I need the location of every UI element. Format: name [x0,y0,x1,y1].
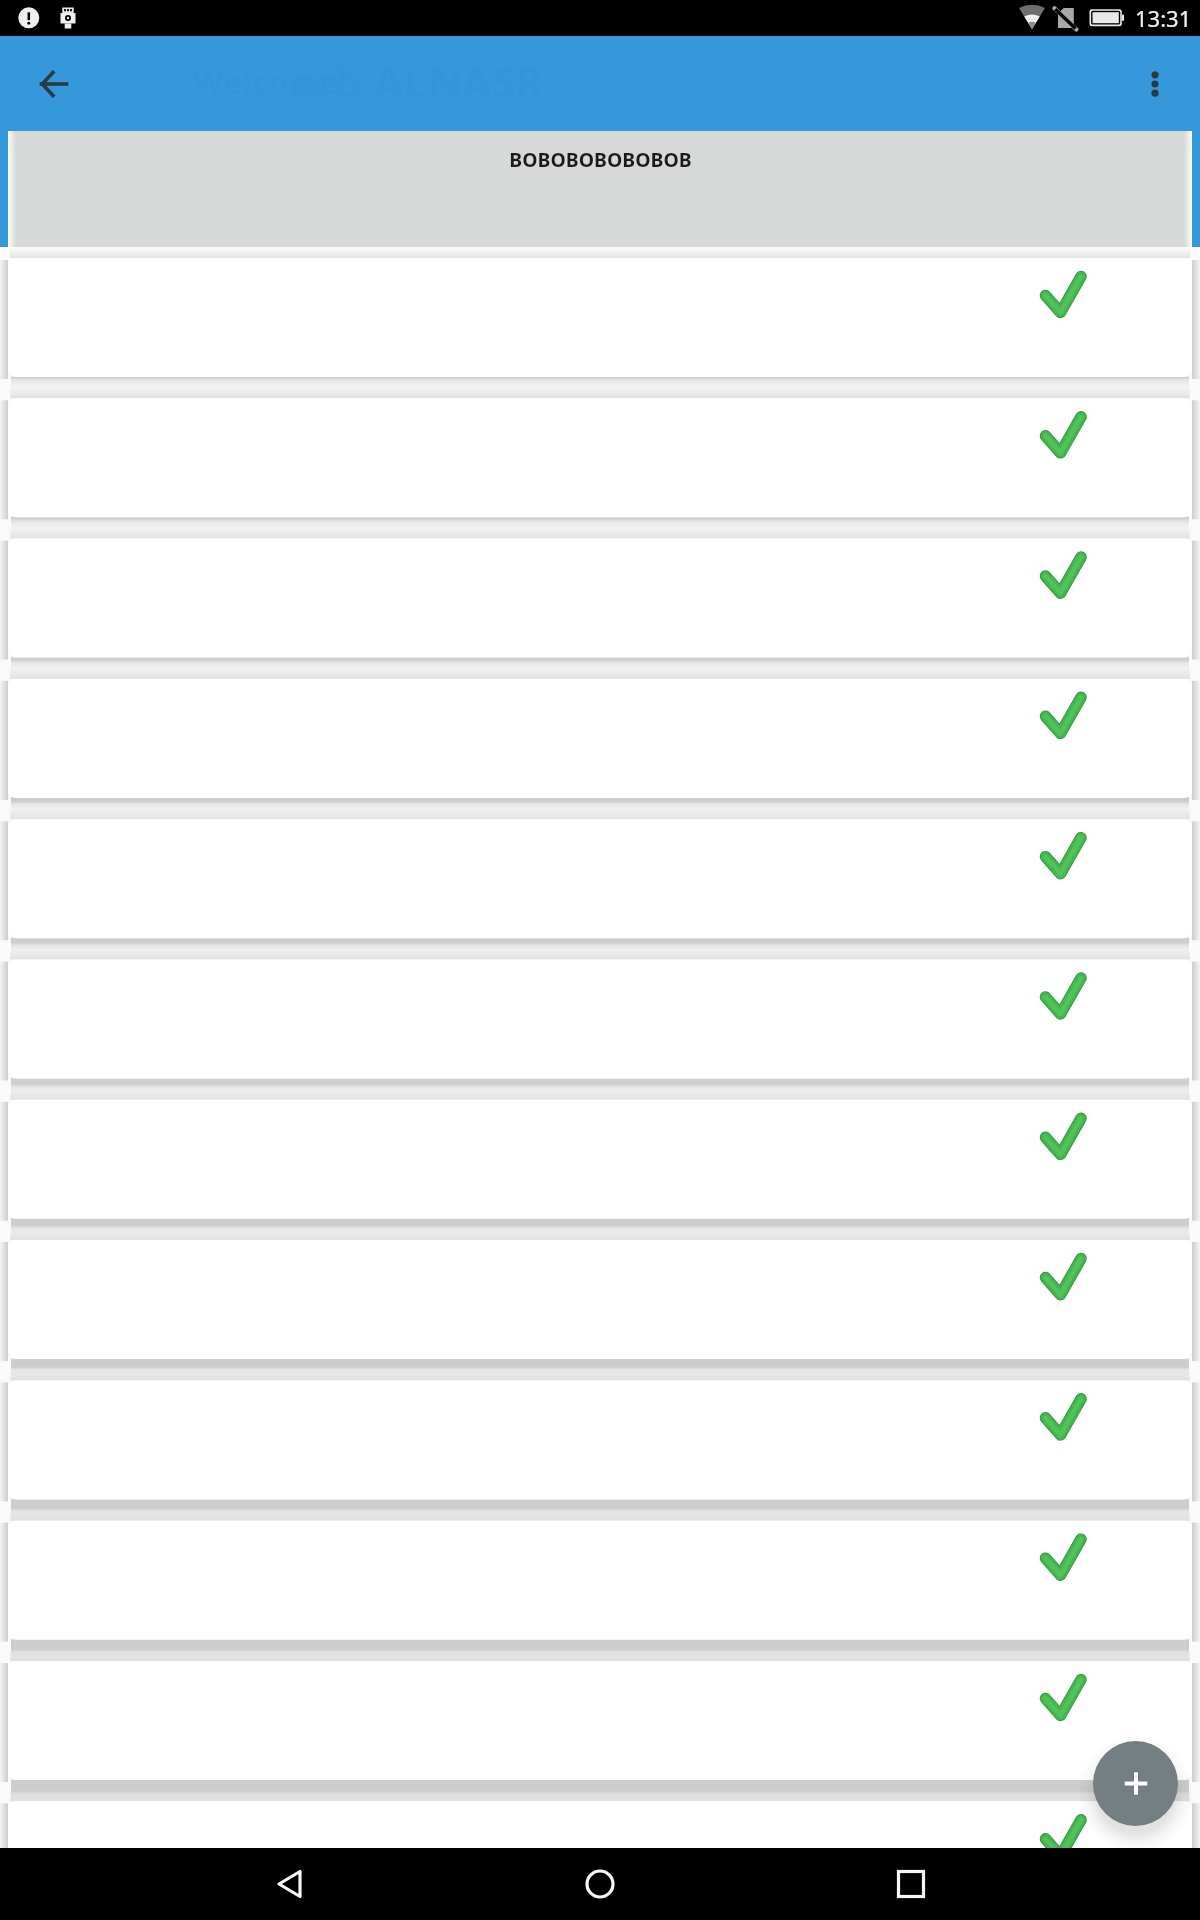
button[interactable] [8,1098,1192,1217]
staticText: 13:31 [1135,3,1192,33]
button[interactable]: Back [254,1848,326,1920]
button[interactable]: Home [564,1848,636,1920]
button[interactable] [8,398,1192,517]
staticText: BOBOBOBOBOBOB [509,146,692,172]
button[interactable] [8,1798,1192,1848]
button[interactable]: Back [22,52,86,116]
button[interactable] [8,538,1192,657]
button[interactable] [8,258,1192,377]
button[interactable] [8,1518,1192,1637]
button[interactable]: Recents [875,1848,947,1920]
button[interactable] [8,678,1192,797]
button[interactable] [8,1378,1192,1497]
button[interactable] [8,1658,1192,1777]
button[interactable] [8,958,1192,1077]
button[interactable] [8,1238,1192,1357]
button[interactable]: More options [1131,60,1179,108]
button[interactable]: Add [1093,1741,1178,1826]
button[interactable] [8,818,1192,937]
